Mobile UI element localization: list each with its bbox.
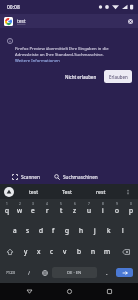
- button[interactable]: Home: [58, 283, 80, 300]
- staticText: 7: [88, 202, 90, 206]
- button[interactable]: Go: [116, 268, 133, 277]
- staticText: f: [52, 226, 55, 235]
- staticText: g: [65, 226, 69, 235]
- staticText: .: [106, 269, 108, 277]
- button[interactable]: 4: [40, 199, 54, 220]
- staticText: 6: [74, 202, 76, 206]
- staticText: Scannen: [21, 174, 40, 180]
- button[interactable]: Recent apps: [98, 283, 120, 300]
- button[interactable]: h: [74, 220, 88, 241]
- button[interactable]: y: [19, 241, 32, 262]
- staticText: p: [129, 206, 133, 215]
- staticText: v: [63, 247, 67, 256]
- button[interactable]: Nicht erlauben: [61, 70, 101, 83]
- staticText: test: [29, 188, 39, 195]
- staticText: m: [104, 247, 111, 256]
- button[interactable]: 3: [26, 199, 40, 220]
- staticText: rest: [96, 188, 106, 195]
- button[interactable]: 7: [82, 199, 96, 220]
- staticText: d: [39, 226, 43, 235]
- button[interactable]: v: [58, 241, 72, 262]
- button[interactable]: 0: [124, 199, 138, 220]
- button[interactable]: k: [102, 220, 116, 241]
- staticText: z: [73, 206, 77, 215]
- staticText: c: [50, 247, 54, 256]
- staticText: h: [79, 226, 84, 235]
- staticText: j: [94, 226, 96, 235]
- button[interactable]: 9: [110, 199, 124, 220]
- button[interactable]: 8: [96, 199, 110, 220]
- staticText: e: [31, 206, 35, 215]
- button[interactable]: s: [21, 220, 34, 241]
- button[interactable]: test: [17, 184, 50, 199]
- button[interactable]: l: [116, 220, 130, 241]
- staticText: Suchmaschinen: [63, 174, 98, 180]
- staticText: l: [122, 226, 124, 235]
- button[interactable]: Search engine: [4, 17, 13, 26]
- button[interactable]: Change language: [38, 262, 52, 283]
- button[interactable]: rest: [84, 184, 118, 199]
- button[interactable]: 5: [54, 199, 68, 220]
- button[interactable]: f: [47, 220, 60, 241]
- staticText: 3: [32, 202, 34, 206]
- staticText: i: [102, 206, 104, 215]
- button[interactable]: Test: [50, 184, 84, 199]
- button[interactable]: Shift: [0, 241, 19, 262]
- staticText: 1: [6, 202, 8, 206]
- staticText: DE · EN: [67, 270, 82, 276]
- staticText: ?123: [6, 270, 16, 276]
- staticText: o: [115, 206, 119, 215]
- button[interactable]: Erlauben: [104, 70, 132, 83]
- button[interactable]: DE · EN: [52, 267, 97, 278]
- staticText: s: [26, 226, 30, 235]
- button[interactable]: n: [86, 241, 100, 262]
- staticText: Test: [62, 188, 72, 195]
- button[interactable]: 6: [68, 199, 82, 220]
- staticText: 00:08: [7, 4, 20, 11]
- staticText: Firefox Preview übermittelt Ihre Eingabe…: [15, 46, 109, 52]
- staticText: w: [17, 206, 23, 215]
- staticText: /: [28, 269, 31, 276]
- staticText: u: [87, 206, 92, 215]
- staticText: y: [24, 247, 28, 256]
- staticText: Erlauben: [109, 74, 128, 80]
- button[interactable]: Gboard settings: [0, 184, 17, 199]
- button[interactable]: Scannen: [9, 172, 43, 182]
- staticText: 2: [19, 202, 21, 206]
- staticText: 8: [102, 202, 104, 206]
- staticText: n: [91, 247, 96, 256]
- button[interactable]: b: [72, 241, 86, 262]
- button[interactable]: a: [8, 220, 21, 241]
- button[interactable]: Back: [18, 283, 40, 300]
- staticText: 0: [130, 202, 132, 206]
- staticText: 5: [60, 202, 62, 206]
- staticText: 4: [46, 202, 48, 206]
- staticText: k: [107, 226, 111, 235]
- button[interactable]: j: [88, 220, 102, 241]
- button[interactable]: c: [45, 241, 58, 262]
- button[interactable]: Backspace: [114, 241, 138, 262]
- staticText: Nicht erlauben: [65, 74, 97, 80]
- button[interactable]: d: [34, 220, 47, 241]
- button[interactable]: ?123: [0, 262, 21, 283]
- button[interactable]: /: [21, 262, 38, 283]
- button[interactable]: Suchmaschinen: [51, 172, 101, 182]
- staticText: t: [60, 206, 63, 215]
- button[interactable]: 2: [13, 199, 26, 220]
- staticText: test: [17, 18, 26, 25]
- button[interactable]: x: [32, 241, 45, 262]
- staticText: b: [77, 247, 81, 256]
- button[interactable]: Clear: [124, 15, 136, 27]
- staticText: q: [5, 206, 9, 215]
- staticText: a: [13, 226, 17, 235]
- button[interactable]: g: [60, 220, 74, 241]
- button[interactable]: More suggestions: [118, 184, 138, 199]
- button[interactable]: .: [97, 262, 116, 283]
- button[interactable]: m: [100, 241, 114, 262]
- staticText: Adressleiste an Ihre Standard-Suchmaschi…: [15, 52, 104, 58]
- staticText: 9: [116, 202, 118, 206]
- staticText: x: [37, 247, 41, 256]
- staticText: r: [46, 206, 49, 215]
- button[interactable]: 1: [0, 199, 13, 220]
- button[interactable]: Weitere Informationen: [15, 58, 60, 64]
